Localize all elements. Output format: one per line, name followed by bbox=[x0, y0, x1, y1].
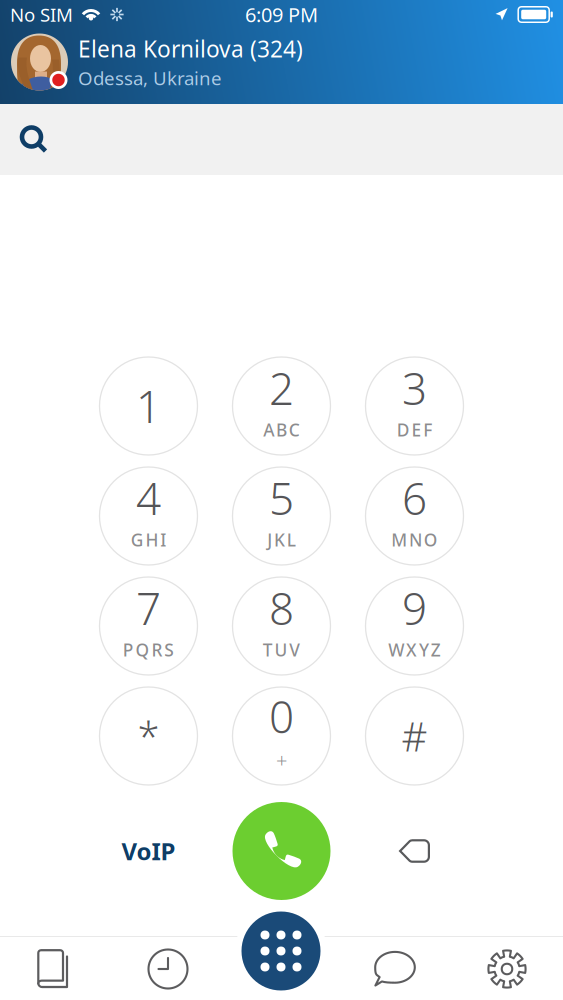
staticText: WXYZ bbox=[388, 638, 441, 661]
staticText: 6 bbox=[402, 469, 427, 527]
staticText: 0 bbox=[269, 687, 294, 745]
staticText: # bbox=[401, 709, 427, 762]
staticText: JKL bbox=[267, 528, 296, 551]
button[interactable]: Delete bbox=[348, 800, 481, 902]
button[interactable]: 3 bbox=[348, 351, 481, 461]
staticText: No SIM bbox=[10, 2, 73, 27]
staticText: * bbox=[137, 709, 159, 762]
staticText: Odessa, Ukraine bbox=[78, 66, 222, 90]
button[interactable]: Settings bbox=[451, 937, 563, 1000]
button[interactable]: 8 bbox=[215, 571, 348, 681]
staticText: PQRS bbox=[123, 638, 174, 661]
staticText: TUV bbox=[263, 638, 300, 661]
staticText: ABC bbox=[263, 418, 300, 441]
button[interactable]: 9 bbox=[348, 571, 481, 681]
button[interactable]: Keypad bbox=[241, 911, 320, 990]
staticText: VoIP bbox=[121, 835, 175, 867]
button[interactable]: Elena Kornilova (324) bbox=[0, 29, 563, 95]
button[interactable]: VoIP bbox=[82, 800, 215, 902]
staticText: 8 bbox=[269, 579, 294, 637]
staticText: MNO bbox=[391, 528, 438, 551]
button[interactable]: Search bbox=[0, 104, 563, 175]
button[interactable]: Contacts bbox=[0, 937, 112, 1000]
staticText: 1 bbox=[136, 377, 161, 435]
button[interactable]: Recents bbox=[112, 937, 224, 1000]
staticText: 2 bbox=[269, 359, 294, 417]
button[interactable]: * bbox=[82, 681, 215, 791]
button[interactable]: 6 bbox=[348, 461, 481, 571]
button[interactable]: Call bbox=[215, 800, 348, 902]
staticText: DEF bbox=[397, 418, 432, 441]
button[interactable]: Messages bbox=[339, 937, 451, 1000]
button[interactable]: 0 bbox=[215, 681, 348, 791]
staticText: GHI bbox=[131, 528, 166, 551]
button[interactable]: 1 bbox=[82, 351, 215, 461]
staticText: + bbox=[276, 746, 287, 773]
button[interactable]: 4 bbox=[82, 461, 215, 571]
button[interactable]: 2 bbox=[215, 351, 348, 461]
staticText: 3 bbox=[402, 359, 427, 417]
staticText: 7 bbox=[136, 579, 161, 637]
button[interactable]: # bbox=[348, 681, 481, 791]
button[interactable]: 7 bbox=[82, 571, 215, 681]
staticText: 5 bbox=[269, 469, 294, 527]
staticText: 6:09 PM bbox=[245, 1, 318, 28]
staticText: 9 bbox=[402, 579, 427, 637]
staticText: Elena Kornilova (324) bbox=[78, 34, 303, 64]
staticText: 4 bbox=[136, 469, 161, 527]
button[interactable]: 5 bbox=[215, 461, 348, 571]
